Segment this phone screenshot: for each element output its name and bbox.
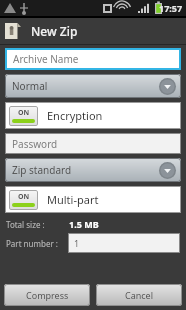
- staticText: Compress: [26, 289, 69, 301]
- button[interactable]: Cancel: [96, 284, 182, 306]
- staticText: Normal: [12, 79, 48, 93]
- staticText: Part number :: [6, 238, 58, 249]
- staticText: Archive Name: [13, 52, 79, 66]
- button[interactable]: Zip standard: [5, 158, 181, 182]
- button[interactable]: ON: [5, 186, 181, 213]
- button[interactable]: 1: [69, 234, 179, 252]
- button[interactable]: Archive Name: [7, 50, 179, 68]
- staticText: ON: [18, 192, 30, 202]
- staticText: Zip standard: [12, 163, 72, 177]
- button[interactable]: ON: [5, 102, 181, 129]
- staticText: 1: [74, 237, 80, 249]
- staticText: 17:57: [159, 2, 183, 14]
- staticText: ON: [18, 108, 30, 118]
- staticText: Multi-part: [47, 192, 99, 207]
- staticText: 1.5 MB: [69, 218, 99, 230]
- staticText: Encryption: [47, 108, 103, 123]
- staticText: New Zip: [31, 23, 78, 39]
- staticText: Total size :: [6, 219, 45, 230]
- button[interactable]: Password: [6, 134, 180, 153]
- staticText: Password: [12, 137, 58, 151]
- button[interactable]: Compress: [4, 284, 90, 306]
- button[interactable]: Normal: [5, 74, 181, 98]
- staticText: Cancel: [125, 289, 154, 301]
